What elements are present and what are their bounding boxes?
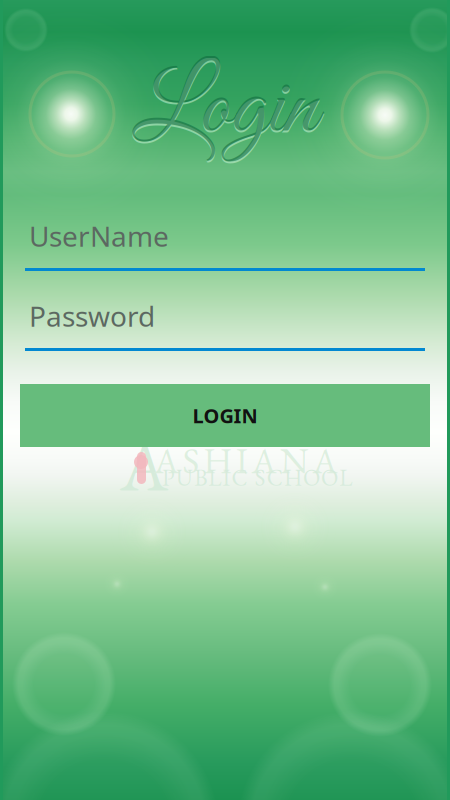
staticText: C	[267, 463, 283, 493]
staticText: I	[222, 463, 230, 493]
staticText: L	[339, 463, 352, 493]
staticText: Login	[132, 50, 317, 168]
button[interactable]: LOGIN	[20, 384, 430, 447]
staticText: S	[183, 437, 200, 484]
staticText: I	[236, 437, 248, 484]
staticText: UserName	[29, 217, 169, 255]
staticText: A	[154, 437, 179, 484]
staticText: A	[313, 437, 338, 484]
staticText: P	[162, 463, 175, 493]
staticText	[249, 463, 254, 493]
staticText: Login	[132, 52, 317, 170]
staticText: U	[176, 463, 193, 493]
staticText: C	[231, 463, 247, 493]
staticText: H	[284, 463, 302, 493]
staticText: O	[321, 463, 338, 493]
staticText: H	[203, 437, 232, 484]
staticText: A	[251, 437, 276, 484]
staticText: L	[208, 463, 221, 493]
staticText: LOGIN	[192, 402, 257, 429]
staticText: S	[255, 463, 266, 493]
staticText: O	[303, 463, 320, 493]
staticText: N	[280, 437, 309, 484]
staticText: Password	[29, 297, 155, 335]
staticText: B	[194, 463, 207, 493]
staticText: A	[120, 421, 168, 511]
